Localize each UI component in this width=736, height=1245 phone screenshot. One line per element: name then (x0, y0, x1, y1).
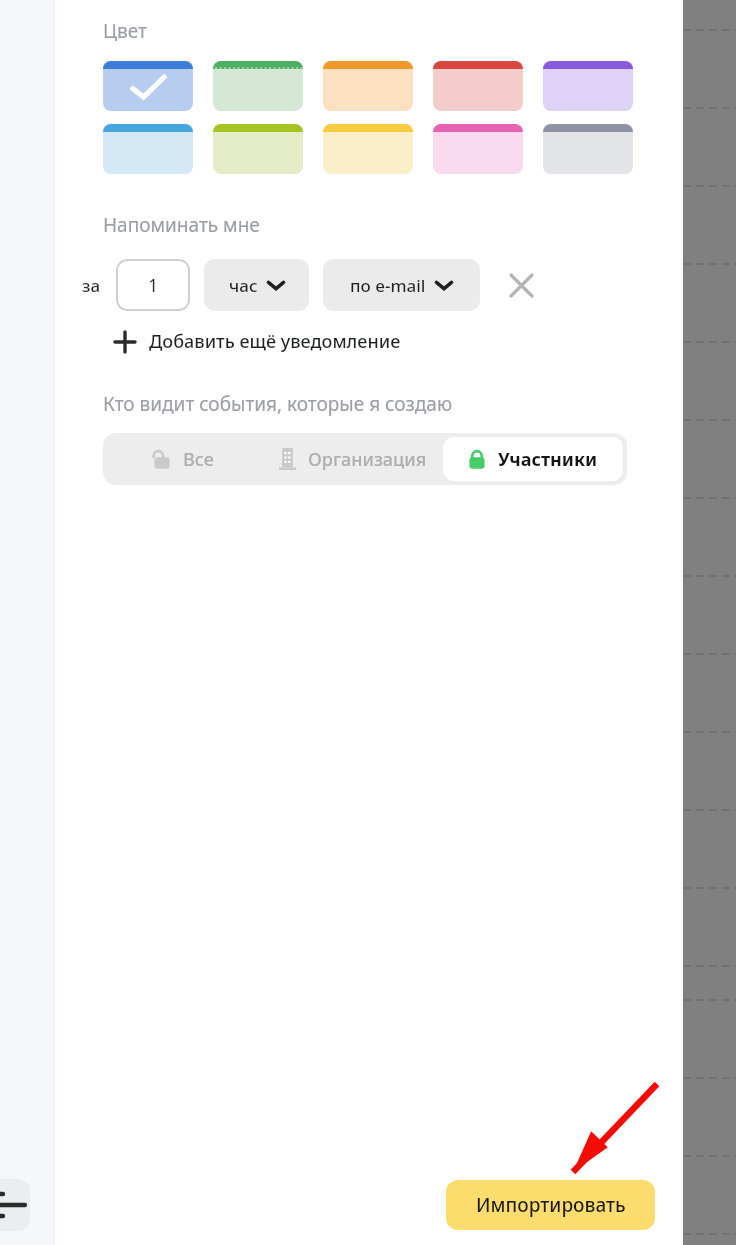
button[interactable]: Настройки (0, 1179, 30, 1231)
button[interactable]: Цвет (323, 61, 413, 111)
staticText: по e-mail (350, 274, 426, 297)
button[interactable]: Добавить ещё уведомление (111, 323, 405, 360)
staticText: Цвет (103, 18, 147, 44)
staticText: Импортировать (476, 1192, 626, 1218)
button[interactable]: Цвет (103, 124, 193, 174)
staticText: Участники (498, 447, 598, 472)
button[interactable]: Цвет (213, 124, 303, 174)
button[interactable]: Цвет (323, 124, 413, 174)
staticText: Организация (308, 447, 427, 472)
button[interactable]: Цвет (213, 61, 303, 111)
staticText: Все (183, 447, 214, 472)
button[interactable]: Цвет (103, 61, 193, 111)
button[interactable]: Импортировать (446, 1180, 655, 1230)
staticText: 1 (148, 273, 159, 298)
staticText: Кто видит события, которые я создаю (103, 391, 453, 417)
button[interactable]: по e-mail (323, 259, 480, 311)
button[interactable]: Цвет (433, 61, 523, 111)
button[interactable]: Цвет (543, 61, 633, 111)
button[interactable]: час (204, 259, 309, 311)
button[interactable]: Цвет (433, 124, 523, 174)
button[interactable]: Удалить уведомление (502, 266, 540, 304)
staticText: за (82, 274, 101, 297)
button[interactable]: Цвет (543, 124, 633, 174)
button[interactable]: 1 (116, 259, 190, 311)
staticText: Добавить ещё уведомление (149, 329, 401, 354)
staticText: Напоминать мне (103, 212, 260, 238)
button[interactable]: Все (103, 433, 263, 485)
button[interactable]: Участники (443, 437, 623, 481)
button[interactable]: Организация (263, 433, 443, 485)
staticText: час (229, 274, 258, 297)
